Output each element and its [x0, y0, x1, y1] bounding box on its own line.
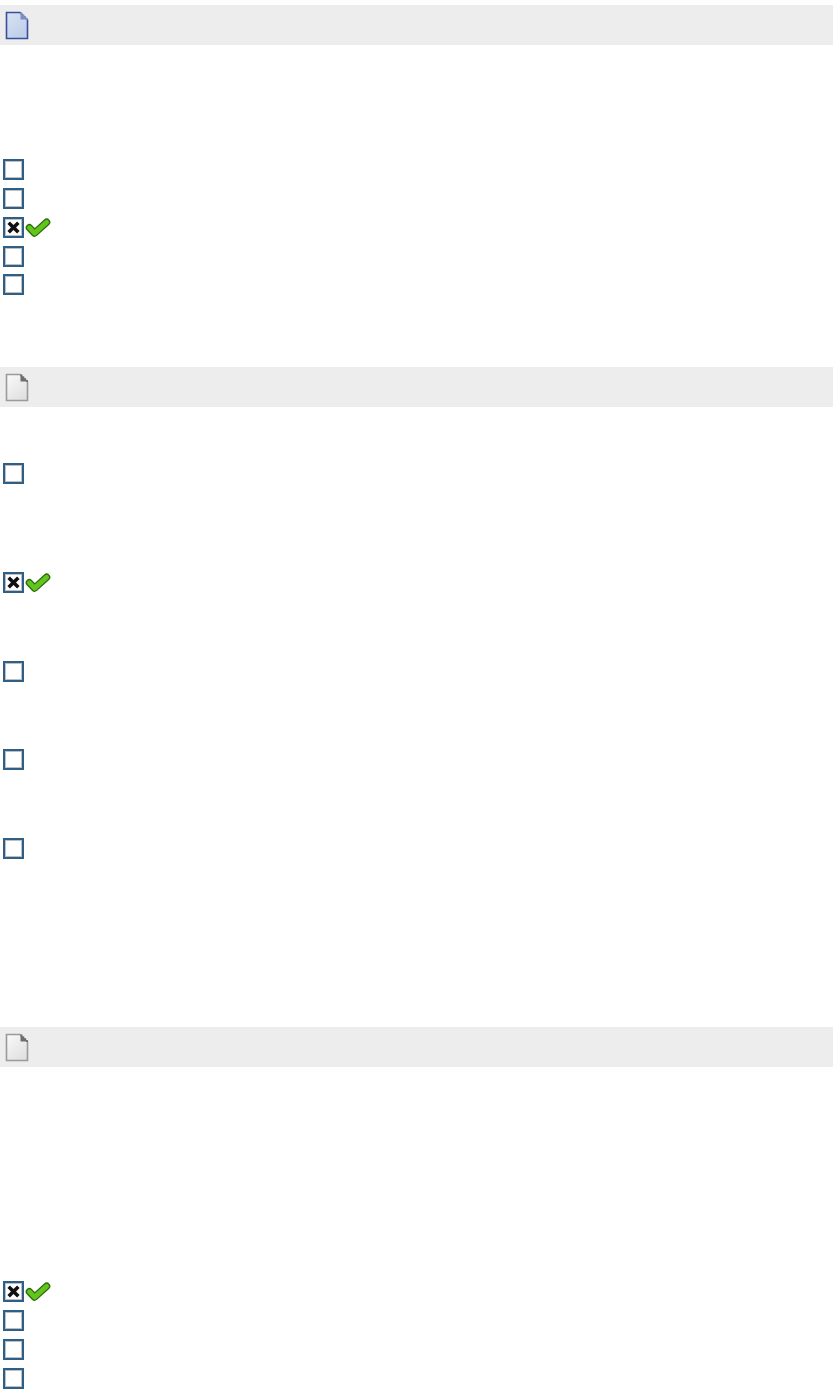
button[interactable]: Option 12 — [3, 1310, 24, 1331]
button[interactable]: Option 13 — [3, 1339, 24, 1360]
button[interactable]: Option 14 — [3, 1368, 24, 1389]
button[interactable]: Question image 3 — [6, 1034, 28, 1061]
button[interactable]: Question image 3 — [0, 1027, 833, 1067]
button[interactable]: Option 2 — [3, 188, 24, 209]
button[interactable]: Option 3, selected — [3, 217, 24, 238]
button[interactable]: Option 10 — [3, 838, 24, 859]
button[interactable]: Option 6 — [3, 463, 24, 484]
other: Correct — [28, 1284, 48, 1300]
button[interactable]: Question image 1 — [0, 5, 833, 45]
button[interactable]: Question image 1 — [6, 12, 28, 39]
button[interactable]: Option 1 — [3, 159, 24, 180]
other: Correct — [28, 575, 48, 591]
button[interactable]: Option 4 — [3, 246, 24, 267]
button[interactable]: Question image 2 — [6, 374, 28, 401]
button[interactable]: Option 8 — [3, 661, 24, 682]
button[interactable]: Option 7, selected — [3, 572, 24, 593]
button[interactable]: Question image 2 — [0, 367, 833, 407]
button[interactable]: Option 11, selected — [3, 1281, 24, 1302]
other: Correct — [28, 220, 48, 236]
button[interactable]: Option 5 — [3, 274, 24, 295]
button[interactable]: Option 9 — [3, 749, 24, 770]
